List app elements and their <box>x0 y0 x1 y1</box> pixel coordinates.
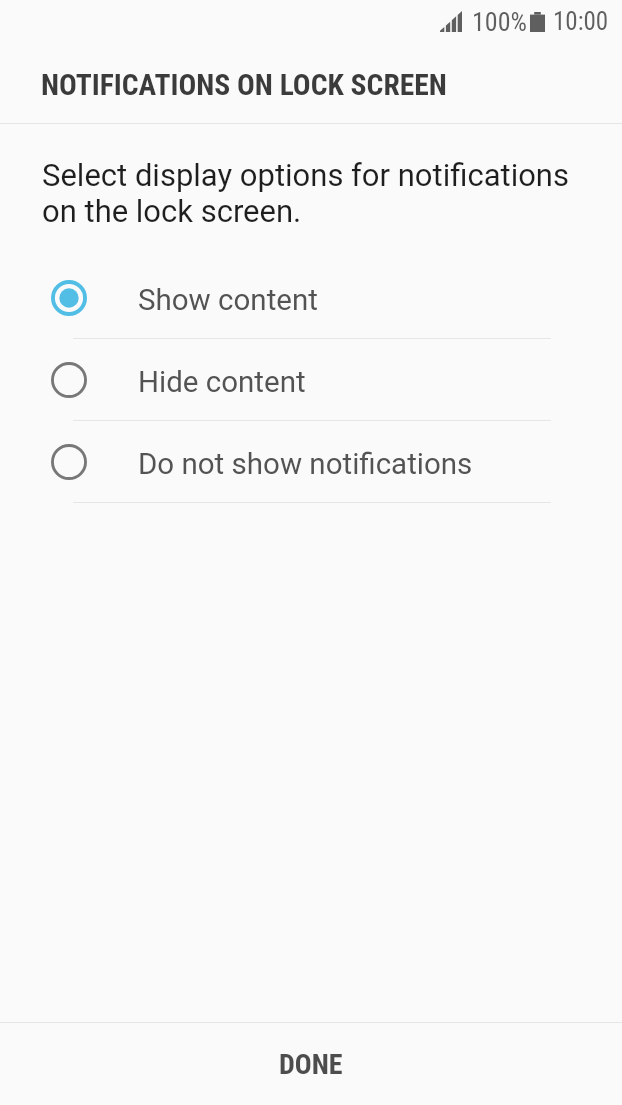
staticText: NOTIFICATIONS ON LOCK SCREEN <box>41 68 447 103</box>
button[interactable]: Do not show notifications <box>0 421 622 503</box>
button[interactable]: Show content <box>0 257 622 339</box>
staticText: 10:00 <box>553 7 609 36</box>
staticText: 100% <box>472 7 527 37</box>
staticText: Do not show notifications <box>138 447 473 482</box>
button[interactable]: DONE <box>0 1023 622 1105</box>
staticText: Show content <box>138 283 318 318</box>
other: Signal strength <box>440 11 462 32</box>
staticText: DONE <box>279 1048 343 1081</box>
button[interactable]: Hide content <box>0 339 622 421</box>
staticText: Select display options for notifications… <box>42 157 592 229</box>
other: Battery <box>530 12 545 32</box>
staticText: Hide content <box>138 365 306 400</box>
